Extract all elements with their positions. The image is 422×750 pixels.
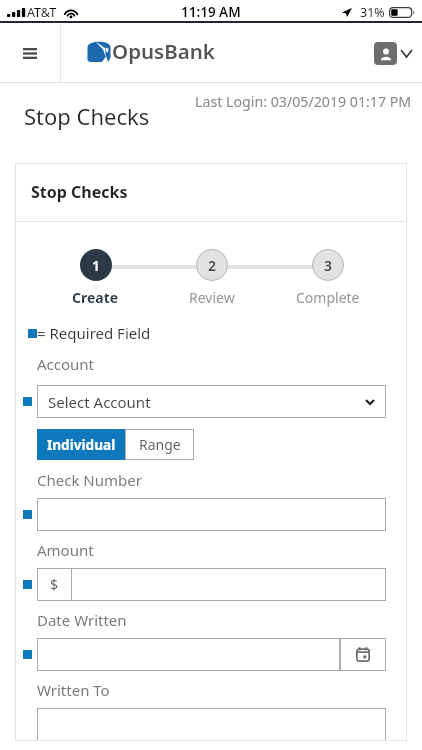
button[interactable]: Pick date: [340, 638, 386, 671]
button[interactable]: Menu: [9, 32, 51, 74]
staticText: AT&T: [27, 4, 57, 21]
button[interactable]: 2: [154, 249, 270, 307]
button[interactable]: 3: [270, 249, 386, 307]
staticText: Create: [72, 288, 119, 307]
staticText: Stop Checks: [31, 181, 128, 203]
staticText: Account: [37, 354, 95, 374]
staticText: 3: [324, 256, 333, 275]
button[interactable]: Select Account: [37, 385, 386, 418]
staticText: Review: [189, 288, 235, 307]
staticText: 1: [92, 256, 101, 275]
staticText: Stop Checks: [24, 101, 150, 131]
button[interactable]: [37, 638, 340, 671]
button[interactable]: Account: [374, 42, 412, 65]
staticText: Range: [139, 435, 181, 454]
staticText: OpusBank: [112, 37, 215, 65]
staticText: Amount: [37, 540, 94, 560]
button[interactable]: [37, 498, 386, 531]
staticText: Select Account: [48, 392, 151, 412]
button[interactable]: [37, 708, 386, 741]
staticText: 31%: [360, 4, 385, 21]
staticText: Individual: [47, 435, 116, 454]
staticText: = Required Field: [37, 323, 151, 343]
button[interactable]: Range: [125, 429, 194, 460]
staticText: Date Written: [37, 610, 127, 630]
button[interactable]: Individual: [37, 429, 125, 460]
staticText: Last Login: 03/05/2019 01:17 PM: [195, 92, 412, 111]
staticText: Written To: [37, 680, 110, 700]
staticText: Check Number: [37, 470, 142, 490]
staticText: $: [50, 575, 59, 594]
staticText: 11:19 AM: [181, 3, 241, 21]
button[interactable]: 1: [37, 249, 154, 307]
button[interactable]: $: [37, 568, 386, 601]
staticText: Complete: [296, 288, 360, 307]
staticText: 2: [208, 256, 217, 275]
